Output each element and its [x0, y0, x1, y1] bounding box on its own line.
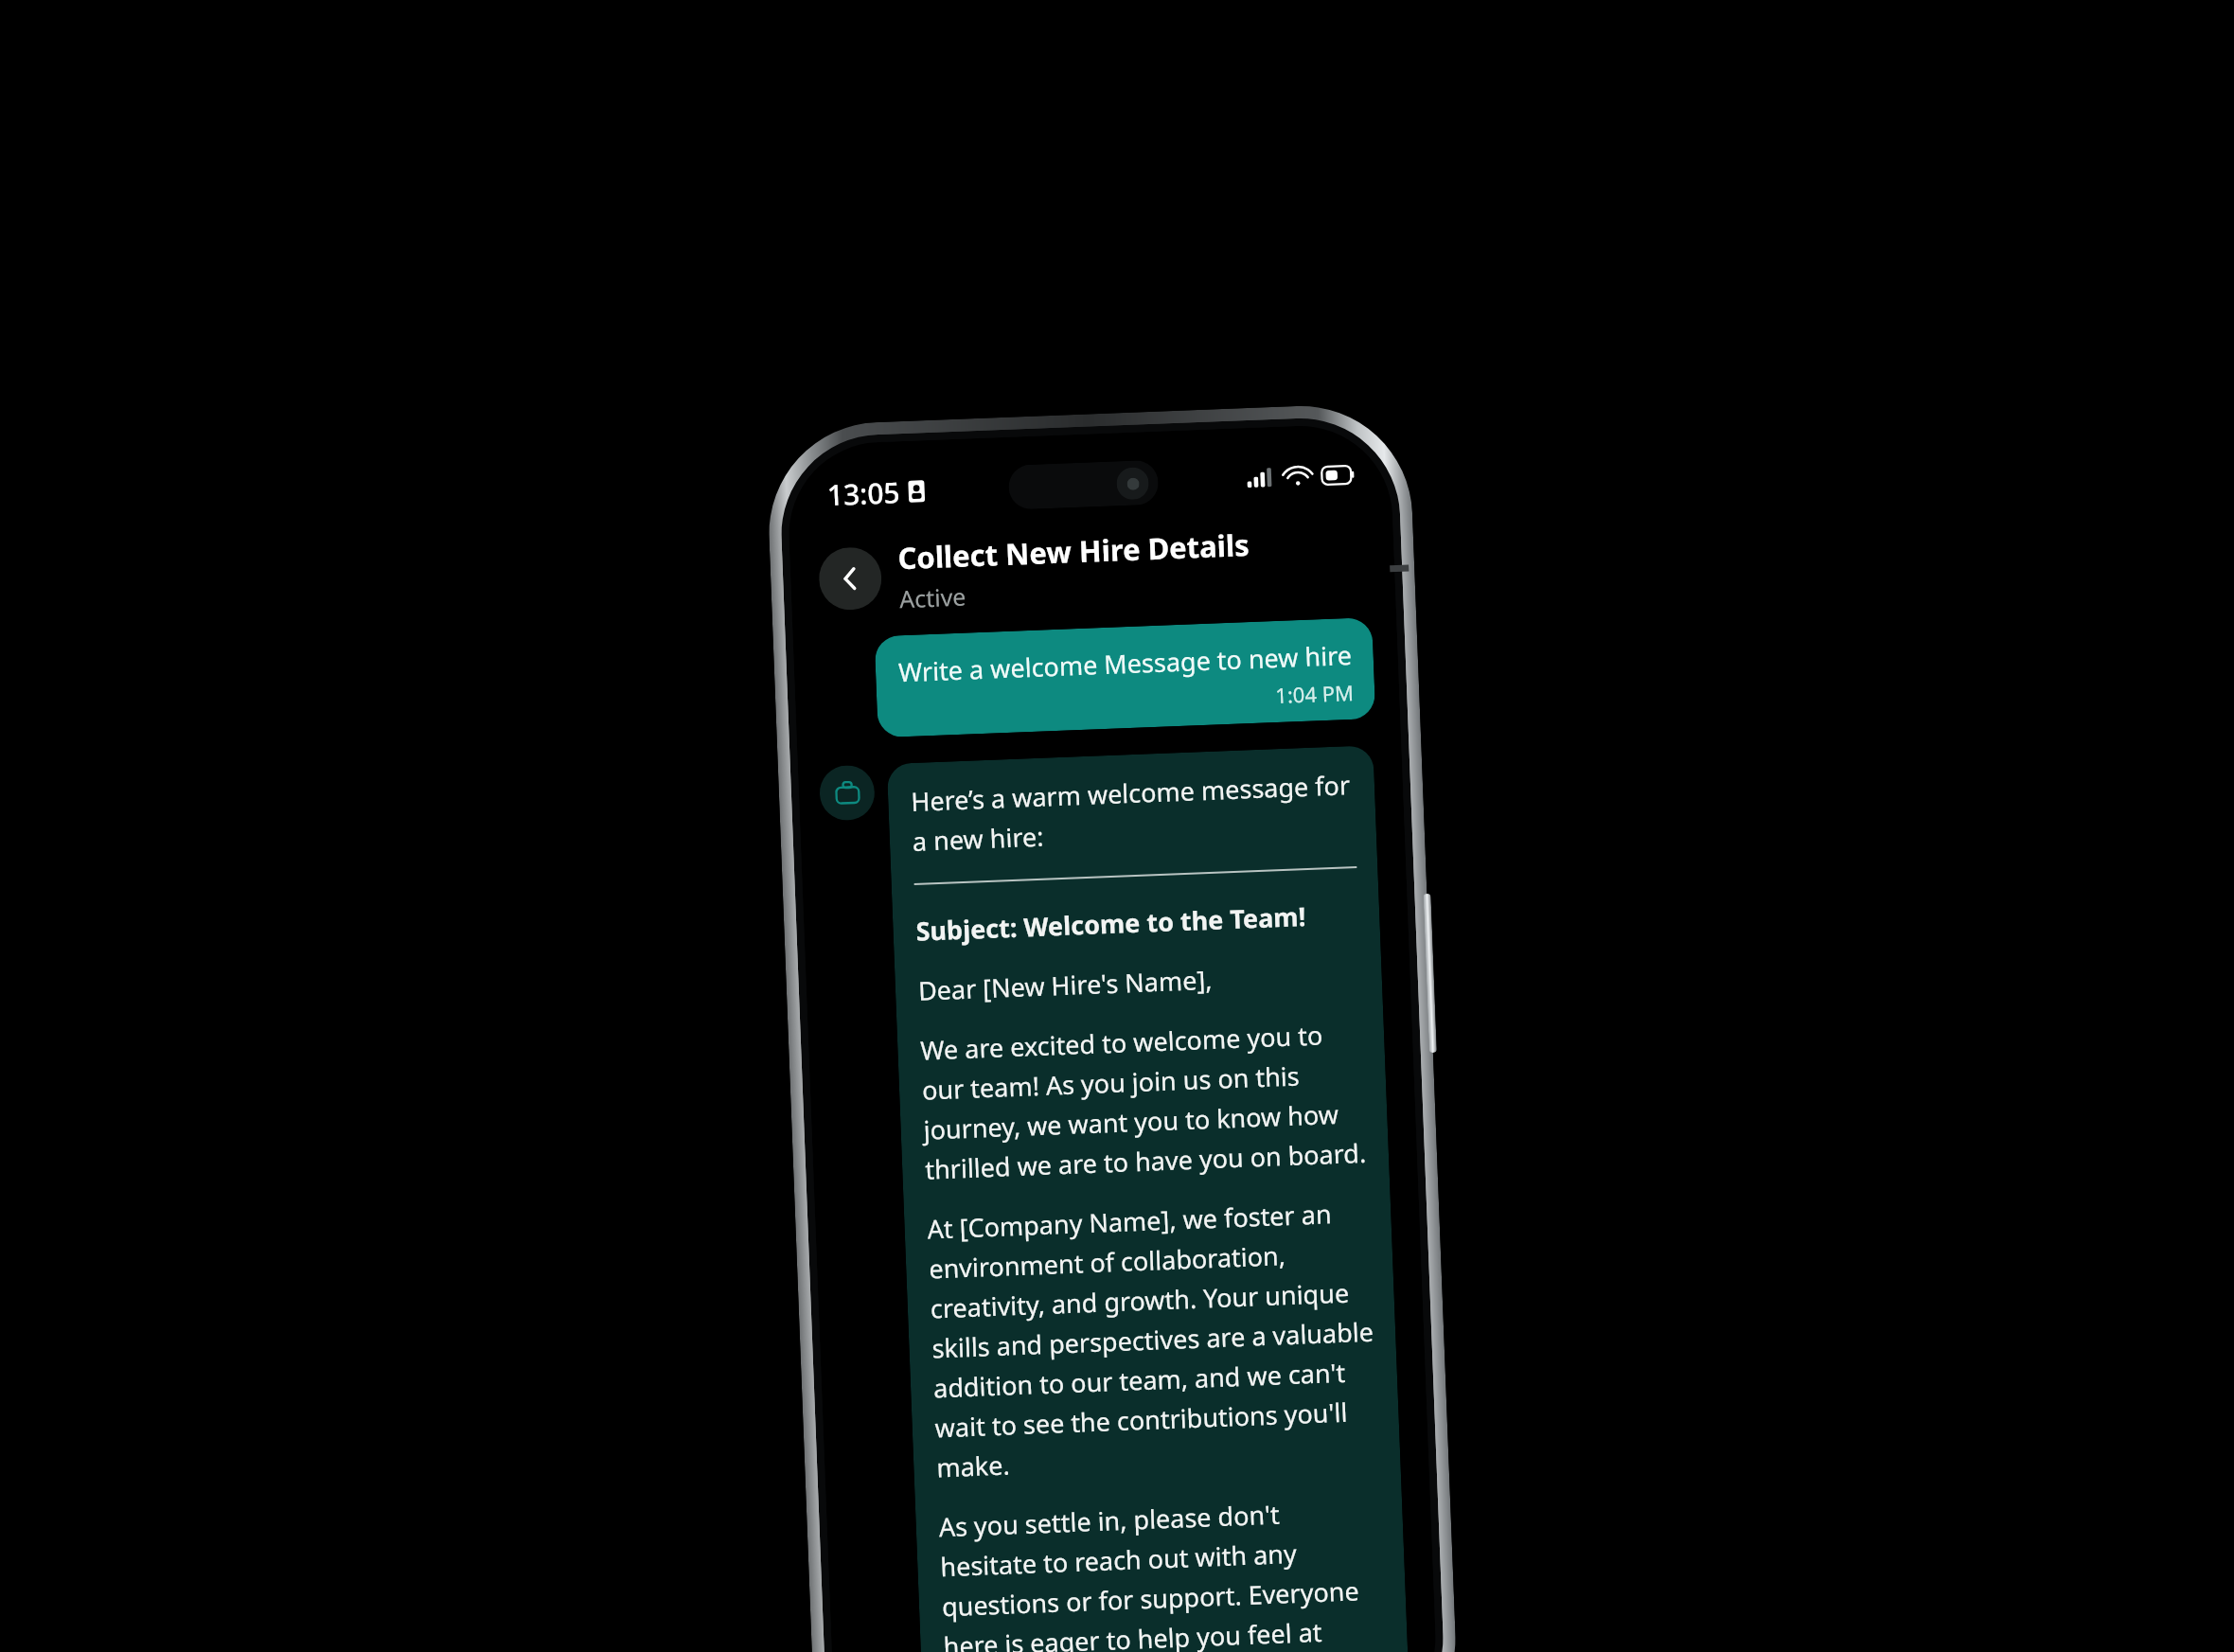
- button[interactable]: Back: [818, 546, 883, 611]
- staticText: Dear [New Hire's Name],: [918, 962, 1213, 1008]
- staticText: We are excited to welcome you to our tea…: [920, 1016, 1368, 1187]
- staticText: Subject: Welcome to the Team!: [915, 898, 1306, 948]
- staticText: 1:04 PM: [1275, 678, 1354, 709]
- button[interactable]: Assistant: [819, 764, 876, 821]
- staticText: Collect New Hire Details: [897, 524, 1250, 578]
- button[interactable]: Write a welcome Message to new hire: [874, 617, 1376, 738]
- staticText: 13:05: [826, 473, 901, 514]
- staticText: Active: [899, 580, 967, 615]
- staticText: Here’s a warm welcome message for a new …: [910, 767, 1356, 859]
- button[interactable]: Here’s a warm welcome message for a new …: [887, 745, 1411, 1652]
- staticText: As you settle in, please don't hesitate …: [938, 1492, 1390, 1652]
- staticText: Write a welcome Message to new hire: [898, 637, 1353, 689]
- staticText: At [Company Name], we foster an environm…: [927, 1194, 1380, 1485]
